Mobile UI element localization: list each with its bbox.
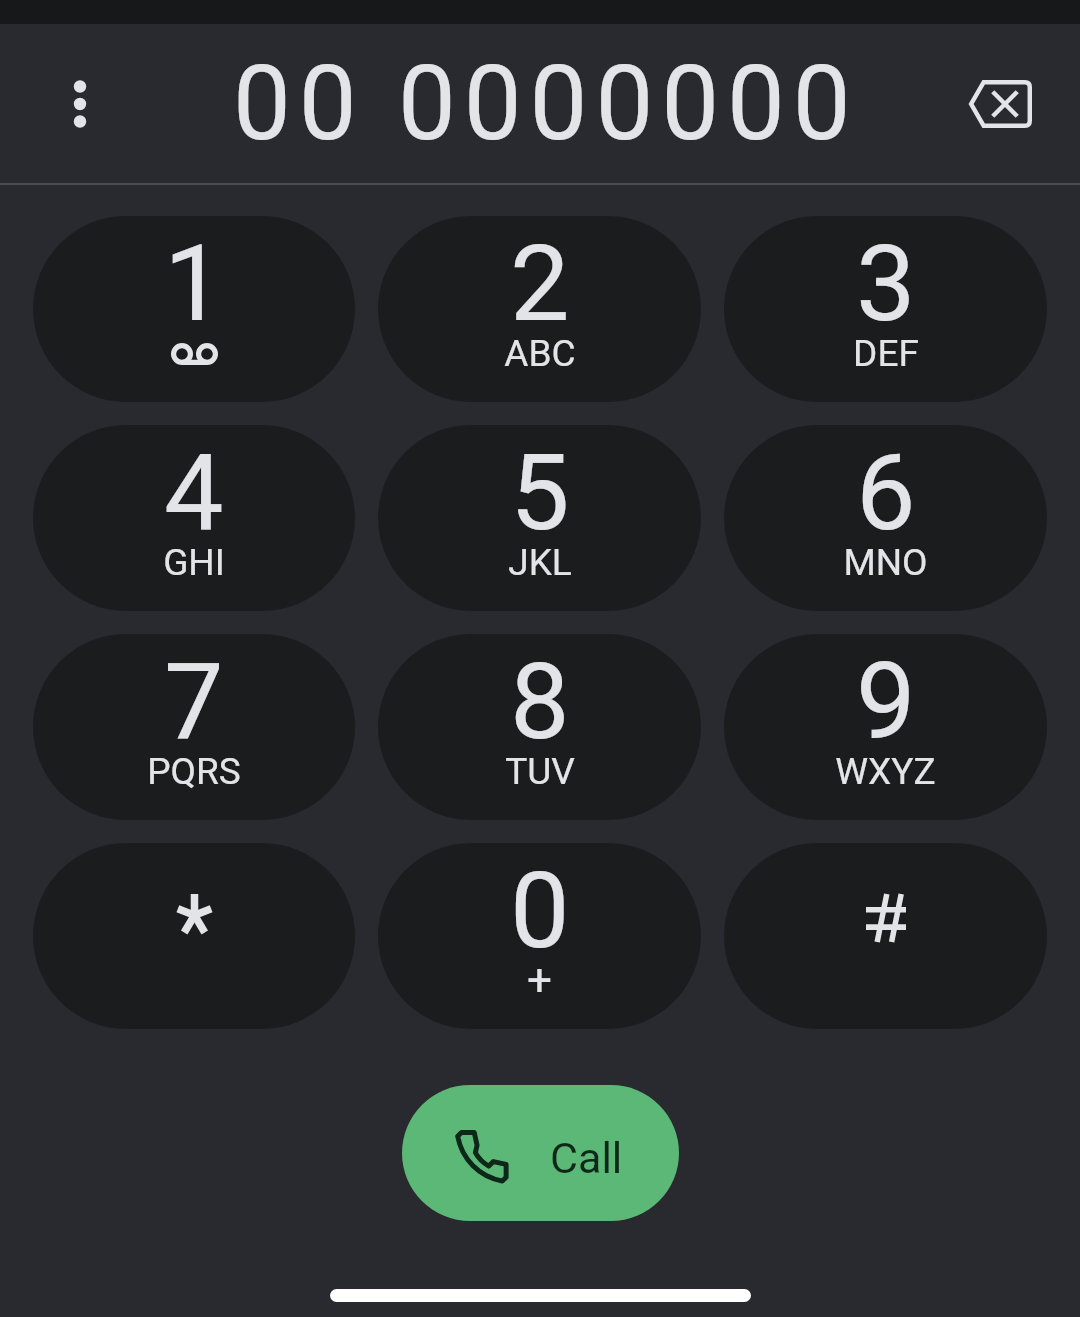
staticText: 5	[510, 431, 570, 555]
button[interactable]: 8	[378, 634, 701, 820]
staticText: 7	[164, 640, 224, 764]
staticText: Call	[550, 1133, 623, 1183]
staticText: DEF	[853, 332, 919, 375]
button[interactable]: Call	[402, 1085, 679, 1221]
button[interactable]: Star	[33, 843, 355, 1029]
staticText: 6	[856, 431, 916, 555]
button[interactable]: More options	[30, 54, 130, 154]
button[interactable]: 1	[33, 216, 355, 402]
staticText: 8	[510, 640, 570, 764]
button[interactable]: 3	[724, 216, 1047, 402]
staticText: GHI	[163, 541, 225, 584]
staticText: 4	[164, 431, 224, 555]
button[interactable]: Pound	[724, 843, 1047, 1029]
button[interactable]: Backspace	[950, 54, 1050, 154]
staticText: PQRS	[147, 750, 241, 793]
staticText: 3	[856, 222, 916, 346]
staticText: JKL	[508, 541, 572, 584]
staticText: 1	[164, 222, 224, 346]
staticText: 00 0000000	[233, 43, 859, 164]
button[interactable]: 5	[378, 425, 701, 611]
button[interactable]: 9	[724, 634, 1047, 820]
button[interactable]: 6	[724, 425, 1047, 611]
staticText: +	[527, 954, 552, 1006]
button[interactable]: 2	[378, 216, 701, 402]
staticText: WXYZ	[835, 750, 936, 793]
staticText: TUV	[505, 750, 575, 793]
staticText: ABC	[504, 332, 576, 375]
button[interactable]: 0	[378, 843, 701, 1029]
button[interactable]: 4	[33, 425, 355, 611]
staticText: 2	[510, 222, 570, 346]
button[interactable]: 7	[33, 634, 355, 820]
staticText: MNO	[843, 541, 928, 584]
staticText: 0	[510, 849, 570, 973]
staticText: 9	[856, 640, 916, 764]
